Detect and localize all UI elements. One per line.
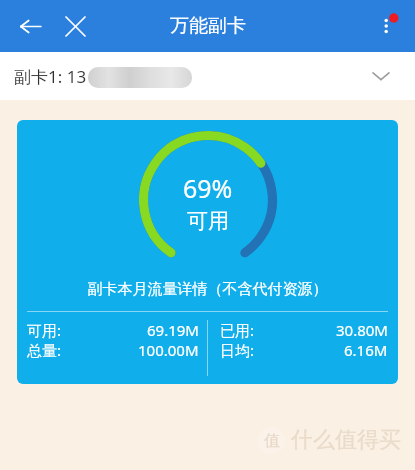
staticText: 已用: <box>220 320 255 340</box>
staticText: 6.16M <box>344 340 388 360</box>
staticText: 可用 <box>187 208 229 234</box>
button[interactable]: Back <box>10 6 50 46</box>
staticText: 可用: <box>27 320 62 340</box>
staticText: 69.19M <box>147 320 199 340</box>
staticText: 副卡1: 13 <box>14 65 87 88</box>
staticText: 总量: <box>27 340 62 360</box>
button[interactable]: Close <box>55 6 95 46</box>
button[interactable]: 副卡1: 13 <box>0 52 415 100</box>
staticText: 100.00M <box>138 340 199 360</box>
staticText: 万能副卡 <box>170 14 246 38</box>
button[interactable]: 69% <box>17 120 398 384</box>
button[interactable]: More options <box>367 4 411 48</box>
staticText: 日均: <box>220 340 255 360</box>
staticText: 30.80M <box>336 320 388 340</box>
button[interactable]: Expand <box>361 56 401 96</box>
staticText: 副卡本月流量详情（不含代付资源） <box>17 280 398 299</box>
staticText: 值 <box>264 431 280 451</box>
staticText: 什么值得买 <box>291 426 401 454</box>
staticText: 69% <box>183 171 233 205</box>
